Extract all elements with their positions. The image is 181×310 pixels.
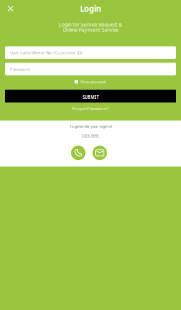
staticText: User name (Meter No./Customer ID)	[10, 50, 82, 55]
button[interactable]: CLICK HERE	[82, 133, 99, 139]
staticText: Password	[10, 66, 30, 72]
staticText: Forgot Password?	[72, 106, 109, 111]
staticText: Login	[80, 3, 101, 14]
staticText: Show password	[80, 79, 106, 84]
button[interactable]: Show password	[75, 78, 106, 85]
staticText: Login for Service Request &	[58, 21, 122, 28]
staticText: CLICK HERE	[82, 134, 99, 138]
button[interactable]: Call support	[71, 146, 85, 160]
button[interactable]: Forgot Password?	[72, 105, 109, 112]
button[interactable]: Email support	[92, 146, 107, 160]
button[interactable]: SUBMIT	[5, 90, 176, 102]
staticText: Online Payment Service	[62, 26, 118, 33]
staticText: SUBMIT	[82, 94, 98, 100]
button[interactable]: Close	[0, 2, 17, 16]
staticText: To generate your login id	[69, 123, 111, 129]
